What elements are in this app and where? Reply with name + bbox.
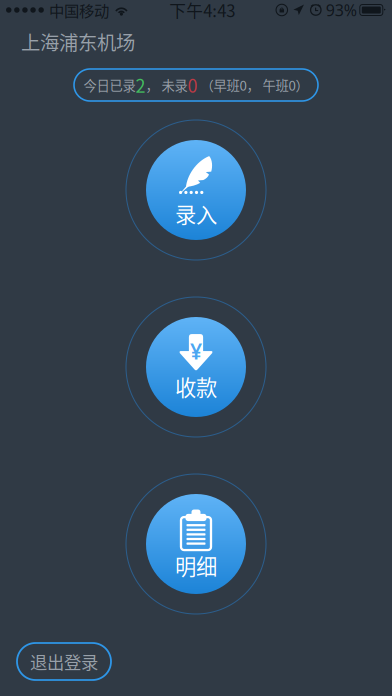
staticText: 下午4:43 [169,0,235,22]
staticText: 0 [187,72,197,98]
staticText: 中国移动 [49,0,109,21]
staticText: 明细 [175,550,217,581]
button[interactable]: ¥ [121,292,271,442]
staticText: （早班0， 午班0） [197,75,308,95]
staticText: 收款 [175,371,217,402]
button[interactable]: 明细 [121,469,271,619]
staticText: 今日已录 [83,75,135,95]
staticText: 录入 [175,198,217,229]
staticText: 93% [326,0,357,21]
staticText: 退出登录 [30,649,98,674]
staticText: 2 [135,72,145,98]
button[interactable]: 录入 [121,115,271,265]
staticText: 上海浦东机场 [21,27,135,55]
staticText: ， 未录 [145,75,187,95]
staticText: ¥ [190,337,202,365]
button[interactable]: 退出登录 [17,643,111,680]
